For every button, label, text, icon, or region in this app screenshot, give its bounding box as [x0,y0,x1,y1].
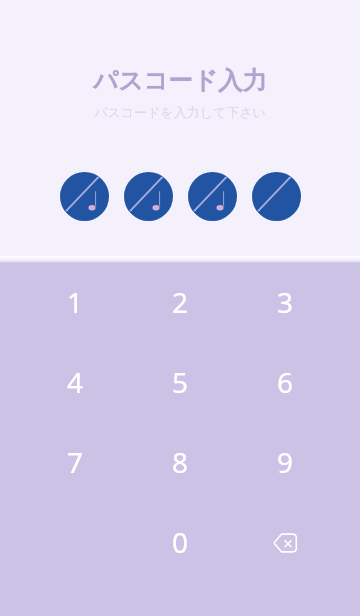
staticText: 7 [67,443,84,481]
staticText: 0 [172,523,189,561]
staticText: パスコードを入力して下さい [0,104,360,120]
button[interactable]: 3 [250,272,320,332]
staticText: 9 [277,443,294,481]
staticText: 6 [277,363,294,401]
button[interactable]: 8 [145,432,215,492]
button[interactable]: Backspace [250,513,320,573]
staticText: パスコード入力 [0,65,360,96]
staticText: 3 [277,283,294,321]
staticText: 5 [172,363,189,401]
button[interactable]: 4 [40,352,110,412]
button[interactable]: 2 [145,272,215,332]
staticText: 1 [67,283,84,321]
button[interactable]: 1 [40,272,110,332]
other: Backspace [271,531,299,555]
button[interactable]: 0 [145,512,215,572]
button[interactable]: 6 [250,352,320,412]
button[interactable]: 9 [250,432,320,492]
button[interactable]: 5 [145,352,215,412]
staticText: 4 [67,363,84,401]
staticText: 2 [172,283,189,321]
button[interactable]: 7 [40,432,110,492]
staticText: 8 [172,443,189,481]
